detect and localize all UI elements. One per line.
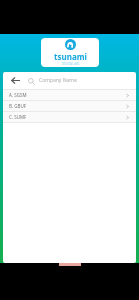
other: Search [26, 76, 36, 86]
staticText: A. SGSM [9, 92, 27, 98]
staticText: Company Name [39, 77, 77, 84]
staticText: C. SUMF [9, 114, 27, 120]
button[interactable]: C. SUMF [3, 112, 136, 122]
button[interactable]: tsunami [41, 38, 99, 67]
button[interactable]: Back [9, 74, 22, 87]
button[interactable]: A. SGSM [3, 90, 136, 100]
button[interactable]: B. GBUF [3, 101, 136, 111]
staticText: DIGITAL ARC [62, 62, 80, 66]
staticText: tsunami [54, 51, 87, 62]
staticText: B. GBUF [9, 103, 27, 109]
